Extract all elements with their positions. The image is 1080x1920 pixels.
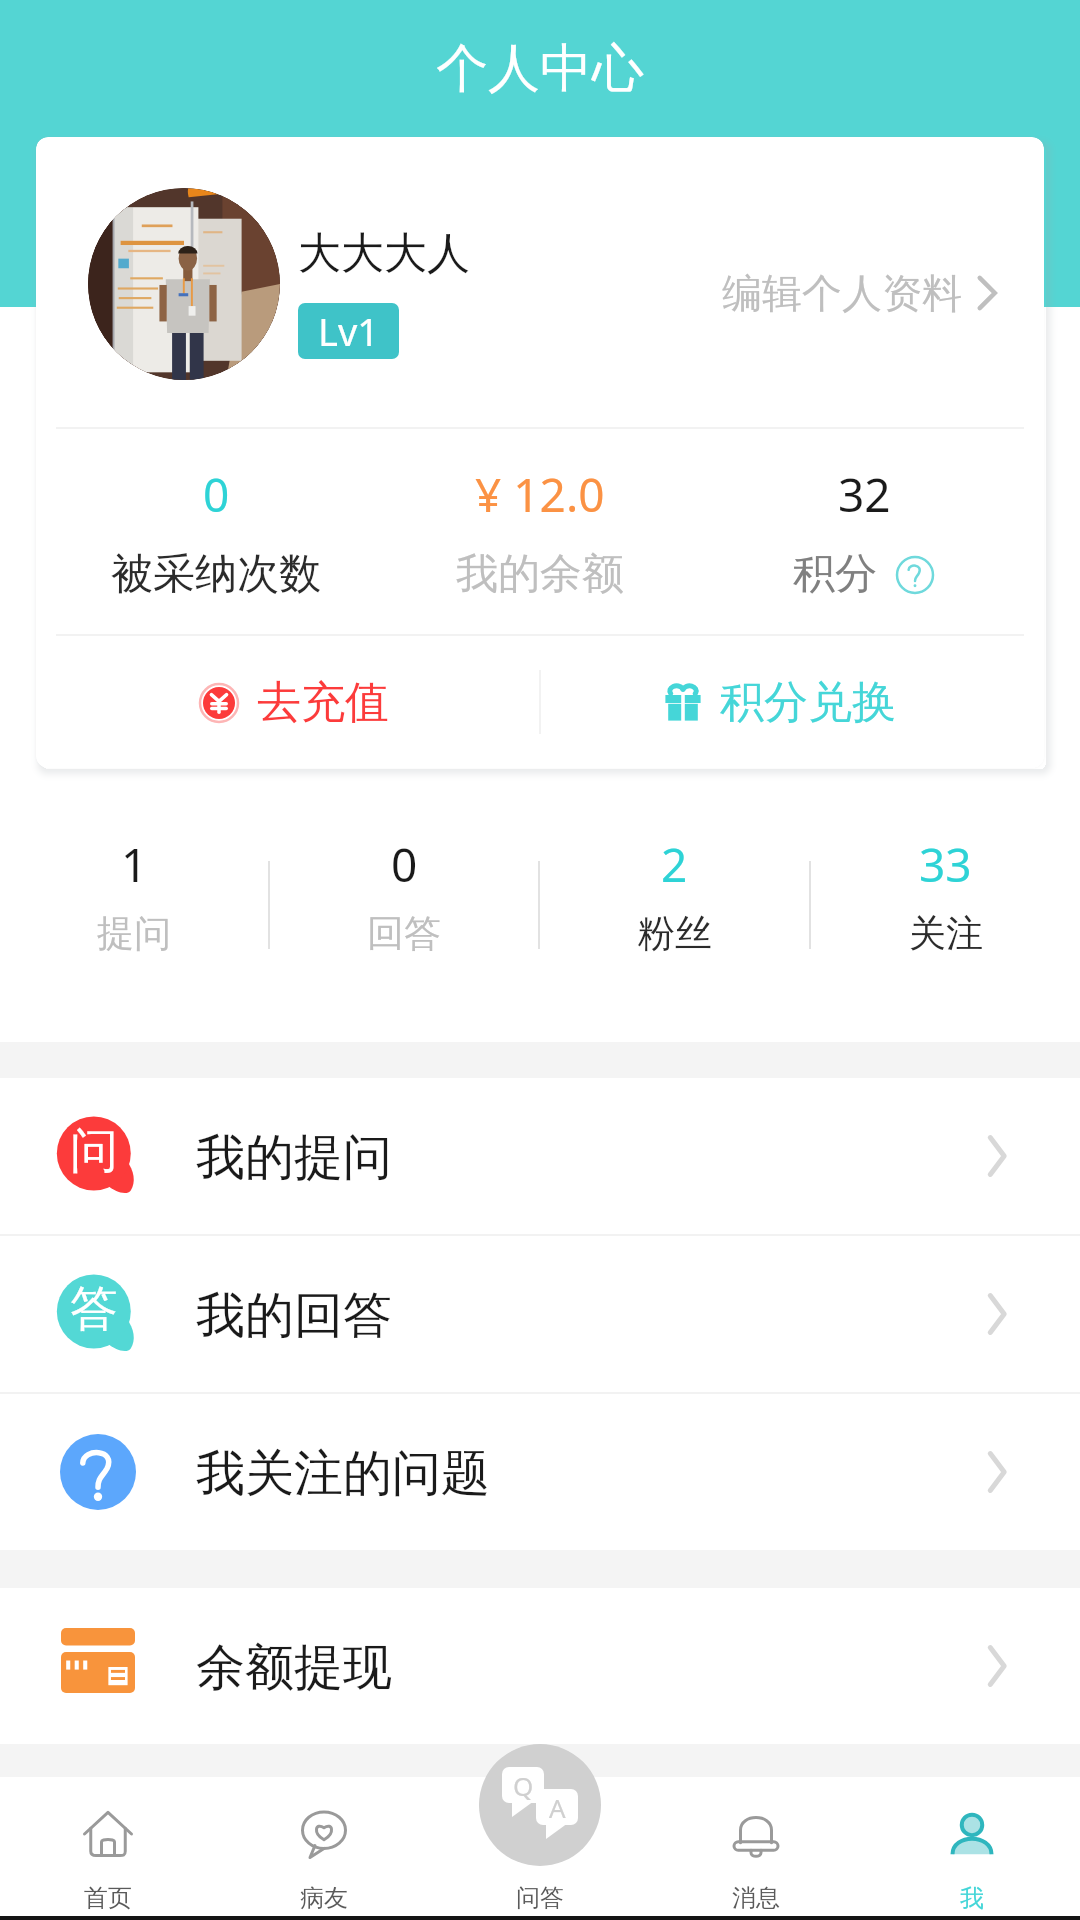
staticText: 个人中心	[436, 36, 644, 102]
staticText: A	[549, 1790, 566, 1825]
button[interactable]: 33	[811, 758, 1080, 1032]
staticText: 余额提现	[196, 1637, 392, 1699]
button[interactable]: 0	[270, 758, 538, 1032]
staticText: 问	[70, 1121, 118, 1181]
button[interactable]: 消息	[648, 1777, 864, 1915]
button[interactable]: 我关注的问题	[0, 1394, 1080, 1550]
staticText: 粉丝	[638, 910, 712, 957]
button[interactable]: 首页	[0, 1777, 216, 1915]
button[interactable]: 32	[702, 429, 1026, 634]
button[interactable]: 答	[0, 1236, 1080, 1392]
button[interactable]: 我	[864, 1777, 1080, 1915]
staticText: 我	[960, 1883, 984, 1913]
button[interactable]: 头像	[88, 188, 280, 380]
staticText: 答	[70, 1279, 118, 1339]
button[interactable]: 余额提现	[0, 1588, 1080, 1744]
staticText: 0	[391, 833, 418, 896]
staticText: ¥ 12.0	[475, 463, 605, 526]
button[interactable]: 问	[0, 1078, 1080, 1234]
button[interactable]: 1	[0, 758, 268, 1032]
button[interactable]: ¥ 12.0	[378, 429, 702, 634]
staticText: 32	[838, 463, 891, 526]
button[interactable]: 问答	[479, 1744, 601, 1866]
button[interactable]: 编辑个人资料	[722, 268, 1000, 318]
staticText: 去充值	[257, 675, 389, 730]
staticText: 消息	[732, 1883, 780, 1913]
button[interactable]: 病友	[216, 1777, 432, 1915]
staticText: 1	[121, 833, 148, 896]
staticText: 我的余额	[456, 548, 624, 601]
staticText: 积分兑换	[720, 675, 896, 730]
staticText: Lv1	[318, 305, 379, 357]
staticText: 我的提问	[196, 1127, 392, 1189]
staticText: 首页	[84, 1883, 132, 1913]
button[interactable]: 问答	[432, 1777, 648, 1915]
button[interactable]: Lv1	[298, 303, 399, 359]
button[interactable]: 去充值	[36, 636, 539, 768]
staticText: 0	[203, 463, 230, 526]
button[interactable]: 积分兑换	[541, 636, 1044, 768]
staticText: 回答	[367, 910, 441, 957]
staticText: 问答	[516, 1883, 564, 1913]
staticText: 关注	[909, 910, 983, 957]
staticText: 编辑个人资料	[722, 268, 962, 318]
button[interactable]: 2	[540, 758, 809, 1032]
button[interactable]: 0	[54, 429, 378, 634]
staticText: Q	[513, 1768, 534, 1803]
staticText: 提问	[97, 910, 171, 957]
staticText: 被采纳次数	[111, 548, 321, 601]
staticText: 积分	[793, 548, 877, 601]
staticText: 大大大人	[298, 227, 470, 281]
staticText: 我的回答	[196, 1285, 392, 1347]
staticText: 2	[661, 833, 688, 896]
staticText: 我关注的问题	[196, 1443, 490, 1505]
staticText: 病友	[300, 1883, 348, 1913]
staticText: 33	[919, 833, 972, 896]
